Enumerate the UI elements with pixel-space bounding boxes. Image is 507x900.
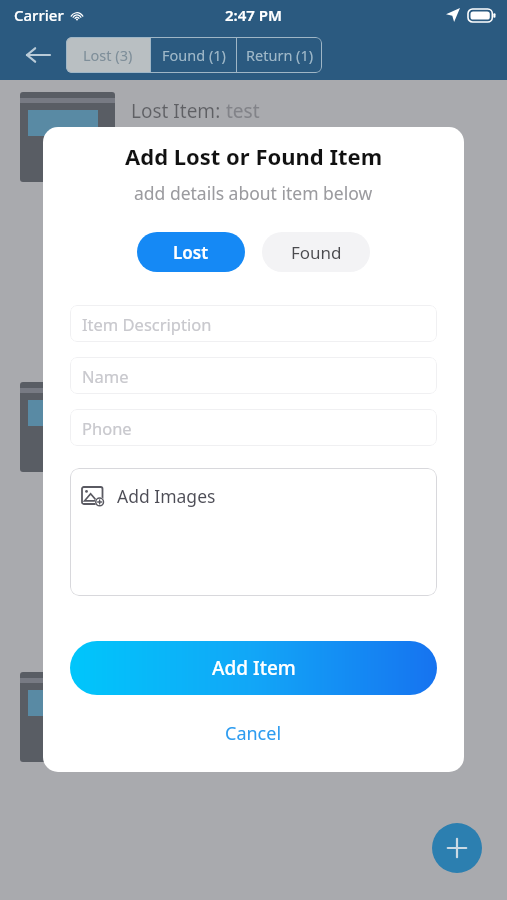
- button[interactable]: Found: [262, 232, 370, 272]
- button[interactable]: Phone: [70, 409, 437, 446]
- button[interactable]: Lost Item:: [0, 80, 507, 190]
- button[interactable]: Add Images: [70, 468, 437, 596]
- staticText: Lost: [173, 241, 209, 264]
- button[interactable]: Lost: [137, 232, 245, 272]
- staticText: Return (1): [246, 45, 314, 65]
- staticText: Add Lost or Found Item: [125, 141, 383, 171]
- button[interactable]: Add Item: [70, 641, 437, 695]
- button[interactable]: Return (1): [237, 37, 322, 73]
- staticText: thing: [226, 678, 273, 704]
- staticText: Found (1): [162, 45, 226, 65]
- staticText: Add Images: [117, 484, 216, 508]
- button[interactable]: Lost Item:: [0, 660, 507, 770]
- staticText: Carrier: [14, 5, 64, 25]
- staticText: Found: [291, 241, 342, 264]
- button[interactable]: Found (1): [151, 37, 236, 73]
- staticText: Lost (3): [83, 45, 133, 65]
- button[interactable]: Lost Item:: [0, 370, 507, 480]
- button[interactable]: Item Description: [70, 305, 437, 342]
- staticText: 2:47 PM: [225, 5, 282, 25]
- staticText: Name: [82, 365, 129, 387]
- staticText: add details about item below: [134, 181, 373, 205]
- button[interactable]: Cancel: [201, 715, 306, 752]
- staticText: Cancel: [225, 721, 282, 746]
- button[interactable]: Name: [70, 357, 437, 394]
- staticText: Lost Item:: [131, 678, 226, 704]
- button[interactable]: Add item: [432, 823, 482, 873]
- button[interactable]: Back: [18, 35, 58, 75]
- staticText: Lost Item:: [131, 388, 226, 414]
- staticText: test: [226, 98, 260, 124]
- staticText: Add Item: [212, 655, 296, 681]
- staticText: Phone: [82, 417, 132, 439]
- staticText: item: [226, 388, 267, 414]
- staticText: Lost Item:: [131, 98, 226, 124]
- button[interactable]: Lost (3): [66, 37, 150, 73]
- staticText: Item Description: [82, 313, 212, 335]
